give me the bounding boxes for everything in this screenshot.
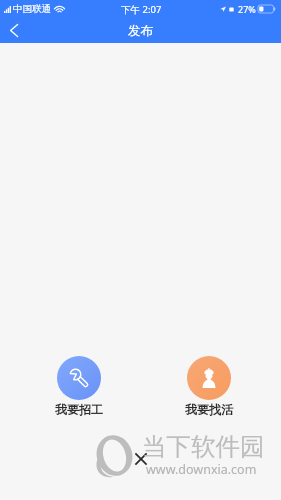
staticText: 我要找活 — [185, 402, 233, 417]
staticText: 我要招工 — [55, 402, 103, 417]
staticText: 中国联通 — [13, 3, 51, 15]
button[interactable]: 我要找活 — [185, 356, 233, 417]
button[interactable]: 我要招工 — [55, 356, 103, 417]
staticText: www.downxia.com — [146, 461, 257, 478]
staticText: 下午 2:07 — [121, 3, 162, 16]
staticText: 当下软件园 — [142, 431, 265, 462]
button[interactable]: Back — [0, 18, 28, 43]
staticText: 发布 — [128, 23, 153, 39]
staticText: 27% — [238, 3, 256, 15]
